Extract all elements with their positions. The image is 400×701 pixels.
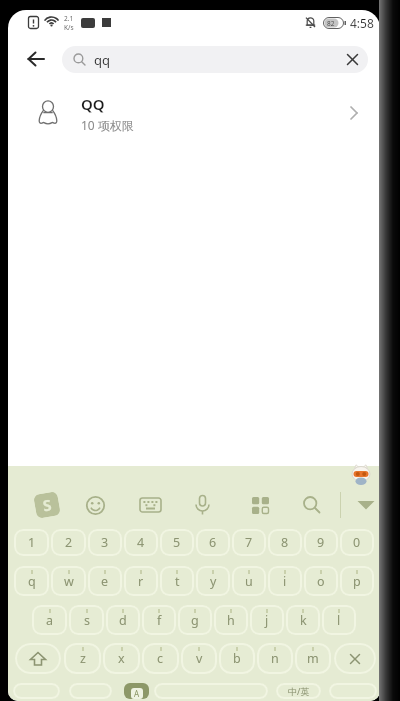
staticText: 3 — [101, 534, 109, 551]
button[interactable]: x — [103, 643, 140, 674]
staticText: t — [175, 573, 180, 590]
staticText: v — [196, 650, 203, 667]
button[interactable] — [346, 53, 359, 66]
staticText: f — [157, 612, 162, 629]
staticText: n — [271, 650, 279, 667]
button[interactable]: i — [268, 566, 302, 596]
staticText: 中/英 — [288, 685, 310, 697]
staticText: 10 项权限 — [81, 117, 134, 133]
staticText: K/s — [64, 23, 74, 32]
button[interactable]: 6 — [196, 529, 230, 556]
button[interactable]: A — [124, 683, 149, 699]
button[interactable]: 9 — [304, 529, 338, 556]
button[interactable]: 8 — [268, 529, 302, 556]
staticText: 4 — [137, 534, 145, 551]
button[interactable]: 中/英 — [276, 683, 321, 699]
staticText: l — [337, 612, 341, 629]
staticText: p — [353, 573, 361, 590]
staticText: QQ — [81, 94, 105, 114]
button[interactable]: b — [219, 643, 255, 674]
button[interactable]: y — [196, 566, 230, 596]
button[interactable]: o — [304, 566, 338, 596]
staticText: j — [265, 612, 269, 629]
staticText: e — [101, 573, 109, 590]
staticText: i — [283, 573, 287, 590]
button[interactable]: m — [295, 643, 331, 674]
staticText: m — [307, 650, 319, 667]
button[interactable]: p — [340, 566, 374, 596]
staticText: y — [210, 573, 217, 590]
staticText: 5 — [173, 534, 181, 551]
button[interactable]: u — [232, 566, 266, 596]
button[interactable]: t — [160, 566, 194, 596]
button[interactable]: a — [32, 605, 67, 635]
staticText: qq — [94, 51, 110, 69]
button[interactable]: n — [257, 643, 293, 674]
button[interactable]: w — [51, 566, 86, 596]
button[interactable] — [15, 643, 61, 674]
button[interactable] — [329, 683, 377, 699]
staticText: z — [80, 650, 86, 667]
staticText: 1 — [28, 534, 36, 551]
button[interactable]: 5 — [160, 529, 194, 556]
button[interactable] — [251, 496, 270, 515]
button[interactable]: g — [178, 605, 212, 635]
button[interactable]: 3 — [88, 529, 122, 556]
button[interactable] — [334, 643, 376, 674]
button[interactable] — [22, 45, 50, 73]
button[interactable]: 7 — [232, 529, 266, 556]
staticText: d — [119, 612, 127, 629]
button[interactable] — [154, 683, 268, 699]
button[interactable] — [194, 494, 211, 516]
button[interactable] — [85, 495, 106, 516]
staticText: b — [233, 650, 241, 667]
staticText: 2 — [65, 534, 73, 551]
staticText: a — [46, 612, 54, 629]
staticText: 6 — [209, 534, 217, 551]
staticText: A — [134, 688, 140, 699]
staticText: g — [191, 612, 199, 629]
button[interactable]: j — [250, 605, 284, 635]
staticText: 82 — [327, 19, 335, 28]
button[interactable]: 4 — [124, 529, 158, 556]
staticText: s — [84, 612, 90, 629]
button[interactable]: l — [322, 605, 356, 635]
button[interactable]: k — [286, 605, 320, 635]
button[interactable]: f — [142, 605, 176, 635]
button[interactable]: qq — [62, 46, 368, 73]
button[interactable]: QQ — [35, 83, 358, 143]
button[interactable] — [139, 495, 162, 515]
staticText: 7 — [245, 534, 253, 551]
button[interactable]: c — [142, 643, 179, 674]
staticText: 2.1 — [64, 14, 74, 23]
staticText: 4:58 — [350, 15, 374, 31]
button[interactable]: 2 — [51, 529, 86, 556]
staticText: u — [245, 573, 253, 590]
button[interactable]: e — [88, 566, 122, 596]
button[interactable]: h — [214, 605, 248, 635]
button[interactable]: s — [69, 605, 104, 635]
button[interactable] — [69, 683, 112, 699]
staticText: q — [28, 573, 36, 590]
staticText: r — [138, 573, 144, 590]
staticText: 0 — [353, 534, 361, 551]
button[interactable]: 0 — [340, 529, 374, 556]
staticText: h — [227, 612, 235, 629]
staticText: 8 — [281, 534, 289, 551]
button[interactable] — [302, 495, 322, 515]
staticText: S — [41, 494, 54, 516]
staticText: 9 — [317, 534, 325, 551]
staticText: k — [300, 612, 307, 629]
button[interactable]: v — [181, 643, 217, 674]
button[interactable]: r — [124, 566, 158, 596]
button[interactable] — [357, 500, 375, 510]
staticText: x — [118, 650, 125, 667]
button[interactable]: z — [64, 643, 101, 674]
button[interactable] — [13, 683, 60, 699]
button[interactable]: 1 — [14, 529, 49, 556]
staticText: o — [317, 573, 325, 590]
button[interactable]: q — [14, 566, 49, 596]
button[interactable]: d — [106, 605, 140, 635]
staticText: c — [157, 650, 164, 667]
button[interactable]: S — [33, 491, 61, 519]
